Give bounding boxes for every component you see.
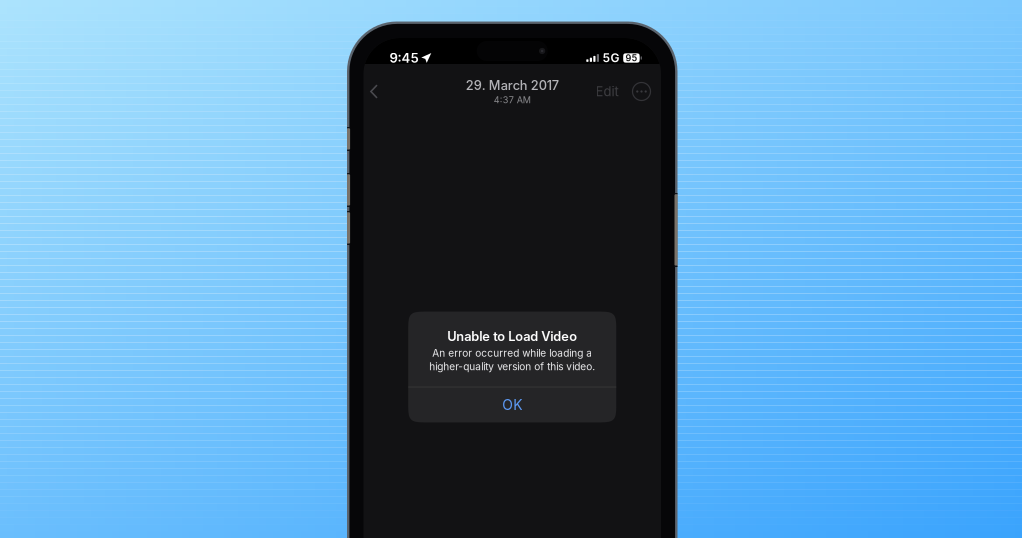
staticText: Unable to Load Video (447, 329, 577, 344)
button[interactable]: Back (363, 76, 384, 106)
staticText: 95 (625, 52, 637, 63)
staticText: An error occurred while loading a (432, 347, 592, 359)
button[interactable]: More options (627, 77, 655, 105)
staticText: 9:45 (389, 50, 418, 66)
staticText: OK (502, 396, 522, 413)
staticText: higher-quality version of this video. (429, 360, 595, 373)
staticText: Edit (595, 84, 618, 99)
staticText: 29. March 2017 (466, 77, 559, 93)
staticText: 5G (603, 51, 620, 65)
staticText: 4:37 AM (494, 94, 531, 105)
button[interactable]: Edit (595, 77, 618, 105)
button[interactable]: OK (408, 387, 616, 422)
